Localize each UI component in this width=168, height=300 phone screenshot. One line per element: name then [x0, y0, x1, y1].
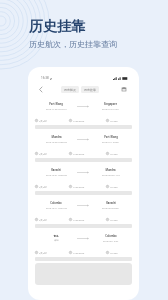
staticText: 10.2kn — [110, 218, 118, 221]
staticText: Port Klang — [104, 135, 118, 139]
staticText: 2019/11/8 17:43 — [102, 108, 119, 111]
staticText: Singapore — [104, 102, 117, 106]
button[interactable]: 青岛 — [28, 228, 139, 261]
button[interactable]: Mundra — [28, 129, 139, 162]
staticText: 1733.8nm — [73, 185, 85, 188]
staticText: Mundra — [51, 135, 62, 139]
staticText: 3天4时 — [39, 185, 47, 188]
staticText: 3天4时 — [39, 251, 47, 254]
staticText: 1733.8nm — [73, 218, 85, 221]
staticText: 10.2kn — [110, 119, 118, 122]
button[interactable]: 历史挂靠 — [81, 86, 99, 93]
staticText: 16:38 — [41, 76, 49, 80]
staticText: Karachi — [51, 168, 61, 172]
button[interactable]: Port Klang — [28, 96, 139, 129]
staticText: 2019/10/20 8:00 — [102, 207, 119, 210]
staticText: Karachi — [106, 201, 116, 205]
button[interactable]: 历史航次 — [61, 86, 79, 93]
staticText: 2019-10-28 12:56:03 — [46, 141, 67, 144]
staticText: Colombo — [50, 201, 62, 205]
staticText: 2019/10/1 3:27 — [103, 240, 119, 243]
staticText: 3天4时 — [39, 218, 47, 221]
staticText: Mundra — [105, 168, 116, 172]
staticText: 2019/11/1 23:00 — [102, 141, 119, 144]
staticText: 2019/10/26 11:15 — [102, 174, 120, 177]
staticText: 3天4时 — [39, 152, 47, 155]
staticText: 1733.8nm — [73, 251, 85, 254]
staticText: Port Klang — [49, 102, 63, 106]
staticText: 3天4时 — [39, 119, 47, 122]
staticText: 历史挂靠 — [84, 88, 96, 92]
staticText: 历史航次，历史挂靠查询 — [29, 39, 117, 49]
button[interactable]: Calendar — [109, 82, 139, 96]
staticText: 未知 — [54, 239, 59, 242]
staticText: 10.2kn — [110, 152, 118, 155]
button[interactable]: Colombo — [28, 195, 139, 228]
staticText: 历史挂靠 — [29, 18, 85, 36]
staticText: 2019-10-21 18:02:09 — [46, 174, 67, 177]
staticText: 2019-11-05 15:15:21 — [46, 108, 67, 111]
staticText: 1733.8nm — [73, 119, 85, 122]
staticText: 1733.8nm — [73, 152, 85, 155]
staticText: 2019-10-11 10:47:33 — [46, 207, 67, 210]
staticText: 青岛 — [53, 234, 59, 237]
staticText: Colombo — [105, 234, 117, 238]
staticText: 历史航次 — [64, 88, 76, 92]
button[interactable]: Back — [28, 82, 52, 96]
staticText: 10.2kn — [110, 185, 118, 188]
staticText: 10.2kn — [110, 251, 118, 254]
button[interactable]: Karachi — [28, 162, 139, 195]
